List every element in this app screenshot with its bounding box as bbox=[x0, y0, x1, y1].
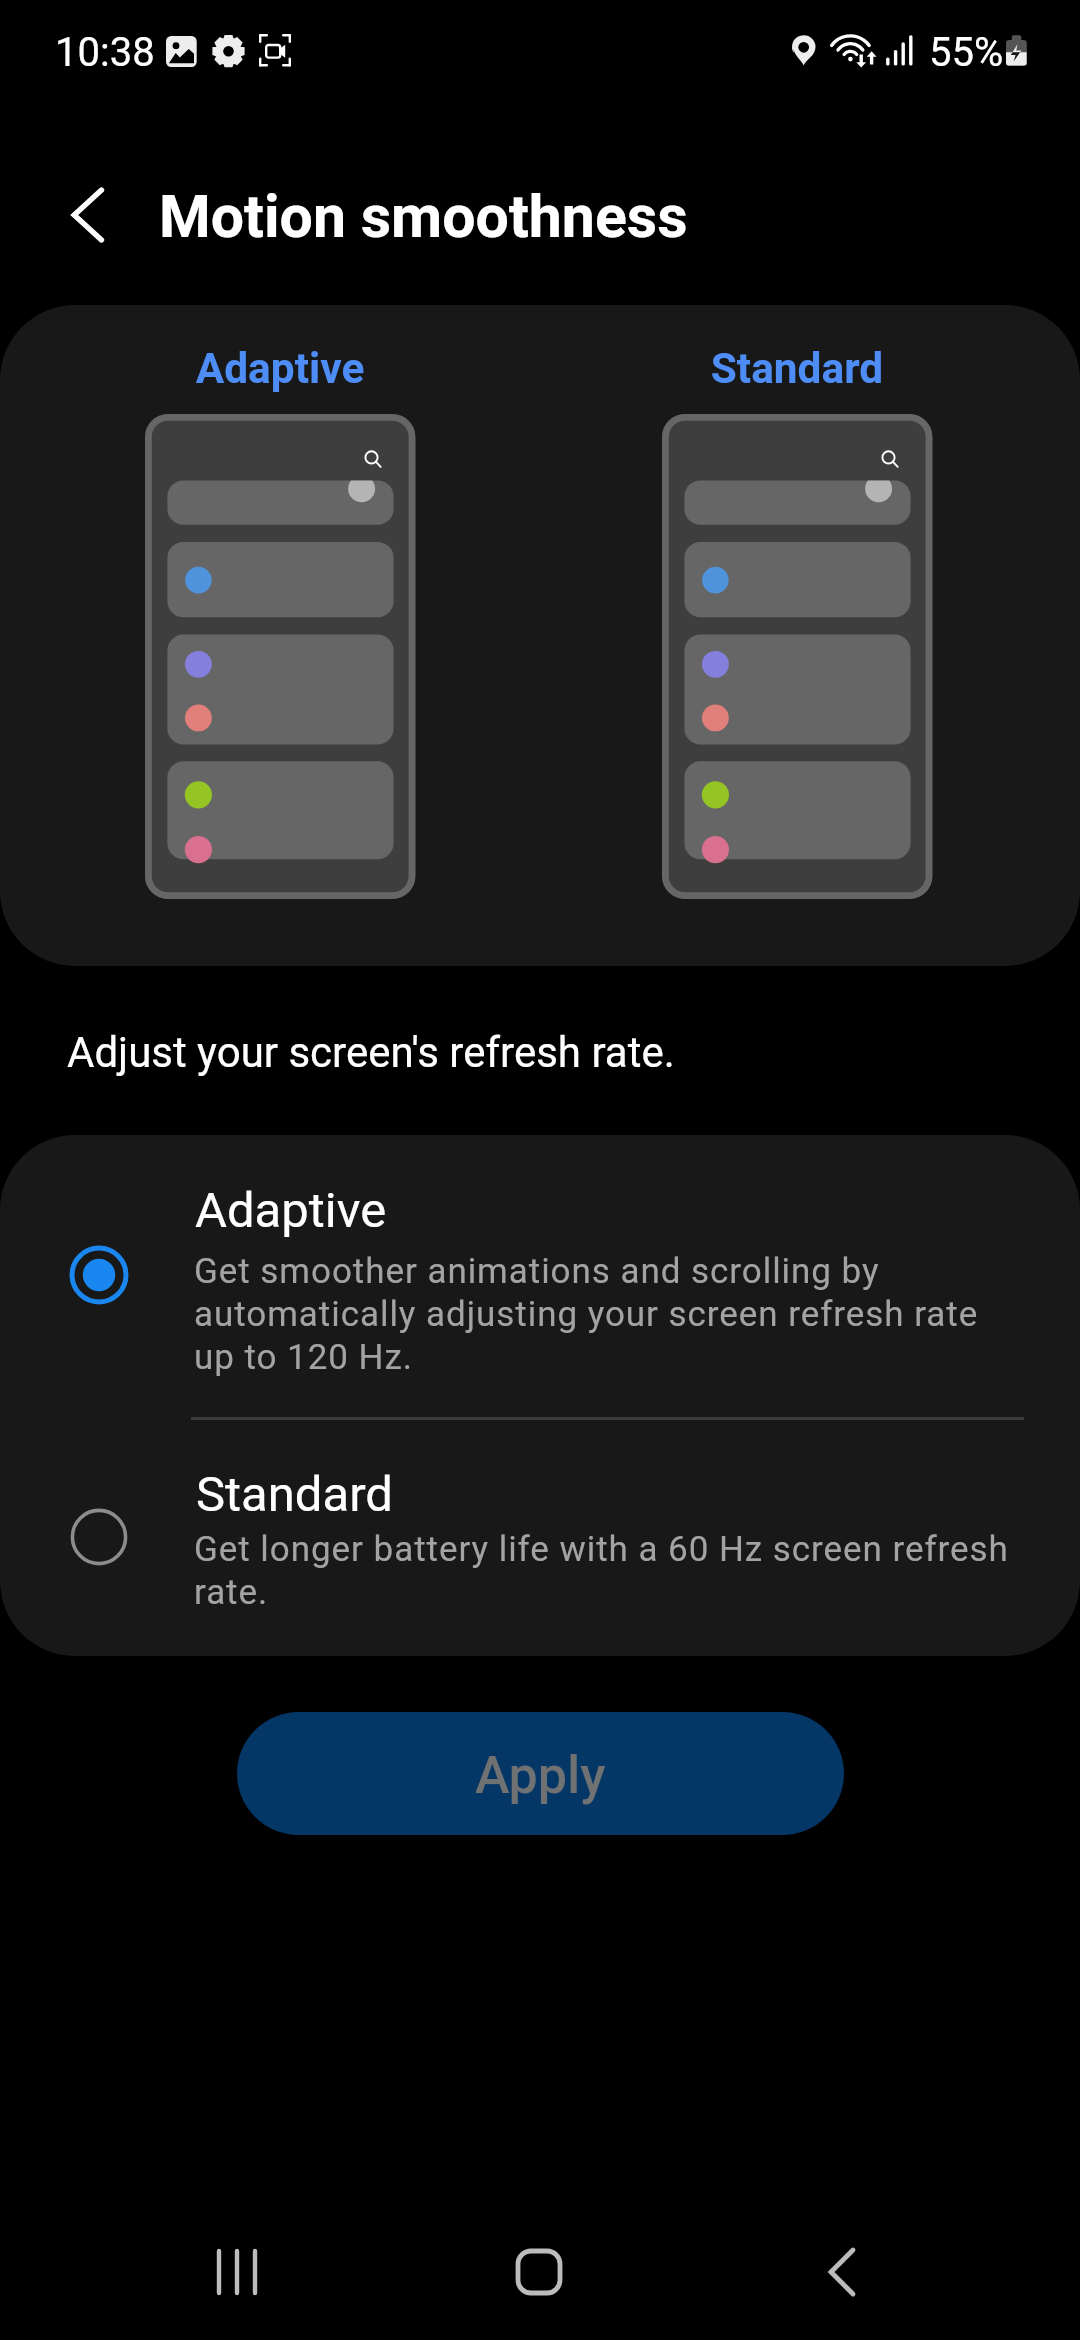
staticText: Apply bbox=[475, 1745, 606, 1806]
button[interactable]: Unselected option bbox=[0, 1420, 1080, 1656]
staticText: Adjust your screen's refresh rate. bbox=[67, 1028, 675, 1077]
staticText: 55% bbox=[929, 29, 1004, 76]
staticText: Motion smoothness bbox=[159, 182, 688, 251]
staticText: Adaptive bbox=[195, 1182, 387, 1239]
button[interactable]: Home bbox=[499, 2232, 579, 2312]
button[interactable]: Selected option bbox=[57, 1233, 141, 1317]
button[interactable]: Back bbox=[802, 2232, 882, 2312]
staticText: 10:38 bbox=[55, 29, 155, 76]
button[interactable]: Apply bbox=[237, 1712, 844, 1835]
staticText: Standard bbox=[196, 1466, 393, 1523]
button[interactable]: Navigate up bbox=[44, 178, 120, 254]
staticText: Standard bbox=[582, 344, 1012, 394]
button[interactable]: Recent apps bbox=[197, 2232, 277, 2312]
button[interactable]: Unselected option bbox=[57, 1495, 141, 1579]
staticText: Get smoother animations and scrolling by… bbox=[194, 1251, 994, 1378]
staticText: Get longer battery life with a 60 Hz scr… bbox=[194, 1529, 1024, 1613]
staticText: Adaptive bbox=[65, 344, 495, 394]
button[interactable]: Selected option bbox=[0, 1135, 1080, 1418]
